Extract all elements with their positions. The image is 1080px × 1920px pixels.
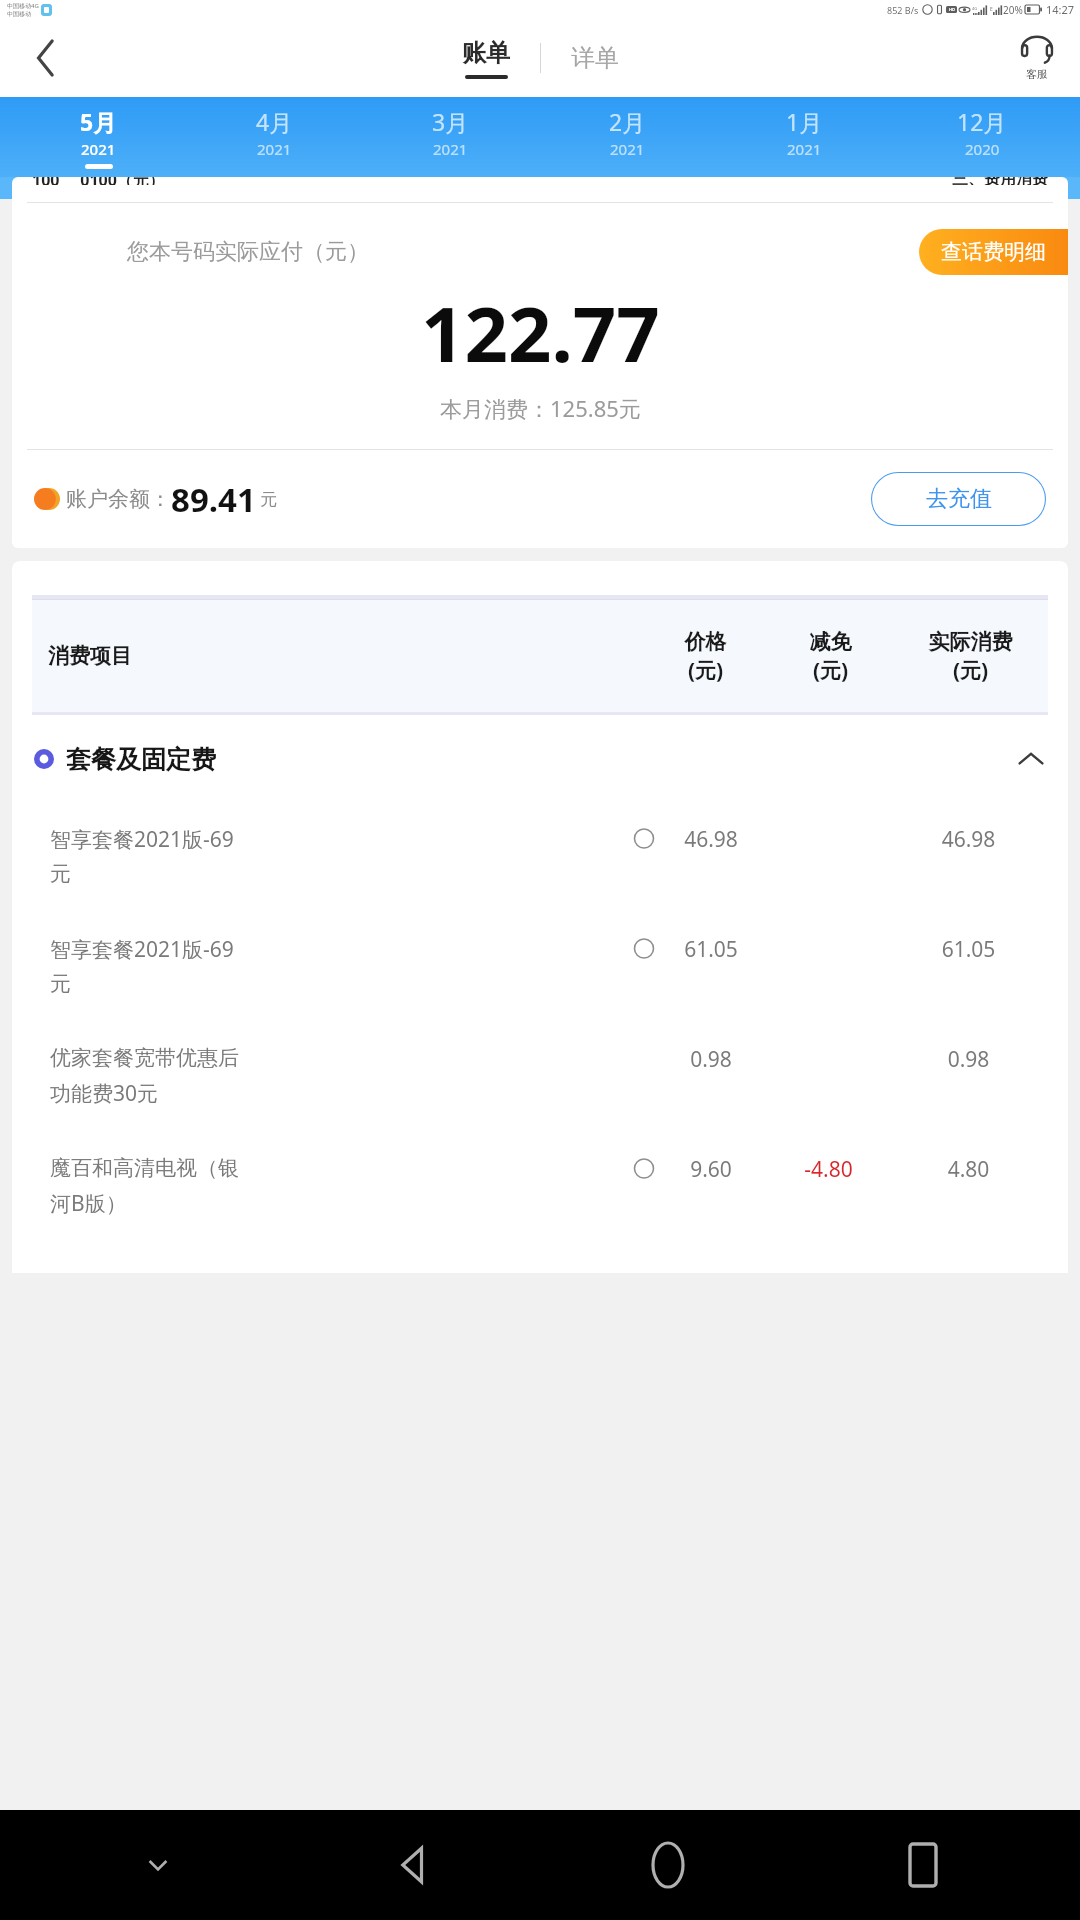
other: Collapse (1016, 749, 1046, 769)
staticText: 5月 (80, 106, 117, 137)
other: Info (632, 828, 656, 849)
staticText: 3月 (432, 106, 469, 137)
staticText: 2021 (81, 139, 116, 159)
staticText: 0.98 (891, 1045, 1046, 1074)
button[interactable]: 优家套餐宽带优惠后 功能费30元 (12, 1023, 1068, 1133)
other: Info (632, 1158, 656, 1179)
button[interactable]: 5月 (10, 97, 186, 177)
staticText: 详单 (571, 43, 619, 73)
staticText: 消费项目 (48, 643, 643, 669)
staticText: 46.98 (656, 825, 766, 854)
staticText: 4G (972, 6, 978, 11)
staticText: HD (949, 7, 955, 12)
button[interactable]: 3月 (362, 97, 539, 177)
staticText: 20% (1003, 3, 1023, 17)
staticText: 122.77 (421, 281, 660, 385)
staticText: 您本号码实际应付（元） (127, 238, 369, 266)
staticText: 智享套餐2021版-69 元 (50, 935, 628, 998)
staticText: 减免 (元) (768, 629, 893, 684)
button[interactable]: 账单 (454, 38, 518, 79)
staticText: 查话费明细 (941, 239, 1046, 265)
staticText: 账单 (462, 38, 510, 68)
staticText: 852 B/s (887, 4, 919, 16)
staticText: 61.05 (891, 935, 1046, 964)
staticText: 优家套餐宽带优惠后 功能费30元 (50, 1045, 656, 1107)
staticText: 价格 (元) (643, 629, 768, 684)
staticText: 2021 (433, 139, 468, 159)
staticText: 2020 (965, 139, 1000, 159)
button[interactable]: 智享套餐2021版-69 元 (12, 803, 1068, 913)
staticText: 元 (260, 489, 277, 510)
staticText: 12月 (957, 106, 1007, 137)
button[interactable]: Home (540, 1810, 795, 1920)
staticText: 本月消费：125.85元 (440, 393, 641, 423)
staticText: 三、费用消费 (952, 177, 1048, 185)
staticText: 中国移动4G (7, 2, 39, 10)
button[interactable]: 魔百和高清电视（银 河B版） (12, 1133, 1068, 1243)
staticText: 4月 (256, 106, 293, 137)
staticText: 2021 (257, 139, 292, 159)
staticText: 客服 (1026, 67, 1048, 81)
other: Info (632, 938, 656, 959)
staticText: 魔百和高清电视（银 河B版） (50, 1155, 628, 1217)
staticText: 中国移动 (7, 10, 31, 18)
button[interactable]: Back (22, 34, 70, 82)
button[interactable]: 1月 (716, 97, 893, 177)
button[interactable]: 2月 (539, 97, 716, 177)
staticText: 4.80 (891, 1155, 1046, 1184)
staticText: 9.60 (656, 1155, 766, 1184)
button[interactable]: 套餐及固定费 (12, 715, 1068, 803)
staticText: 1月 (786, 106, 823, 137)
button[interactable]: 去充值 (871, 472, 1046, 526)
staticText: 2021 (787, 139, 822, 159)
button[interactable]: 详单 (563, 37, 627, 79)
staticText: 46.98 (891, 825, 1046, 854)
staticText: 89.41 (171, 477, 256, 522)
staticText: 100 0100（元） (32, 177, 165, 185)
staticText: 0.98 (656, 1045, 766, 1074)
staticText: 2021 (610, 139, 645, 159)
button[interactable]: 智享套餐2021版-69 元 (12, 913, 1068, 1023)
staticText: E (990, 6, 993, 13)
staticText: 2月 (609, 106, 646, 137)
button[interactable]: 客服 (1016, 31, 1058, 85)
staticText: 去充值 (926, 485, 992, 513)
staticText: 智享套餐2021版-69 元 (50, 825, 628, 888)
staticText: 实际消费 (元) (893, 629, 1048, 684)
staticText: 14:27 (1046, 2, 1075, 17)
staticText: -4.80 (766, 1155, 891, 1184)
button[interactable]: 4月 (186, 97, 362, 177)
button[interactable]: 查话费明细 (919, 229, 1068, 275)
staticText: 套餐及固定费 (66, 744, 216, 775)
staticText: 账户余额： (66, 486, 171, 512)
button[interactable]: Recents (795, 1810, 1050, 1920)
button[interactable]: 12月 (893, 97, 1070, 177)
staticText: 61.05 (656, 935, 766, 964)
button[interactable]: Back (285, 1810, 540, 1920)
button[interactable]: Hide (30, 1810, 285, 1920)
